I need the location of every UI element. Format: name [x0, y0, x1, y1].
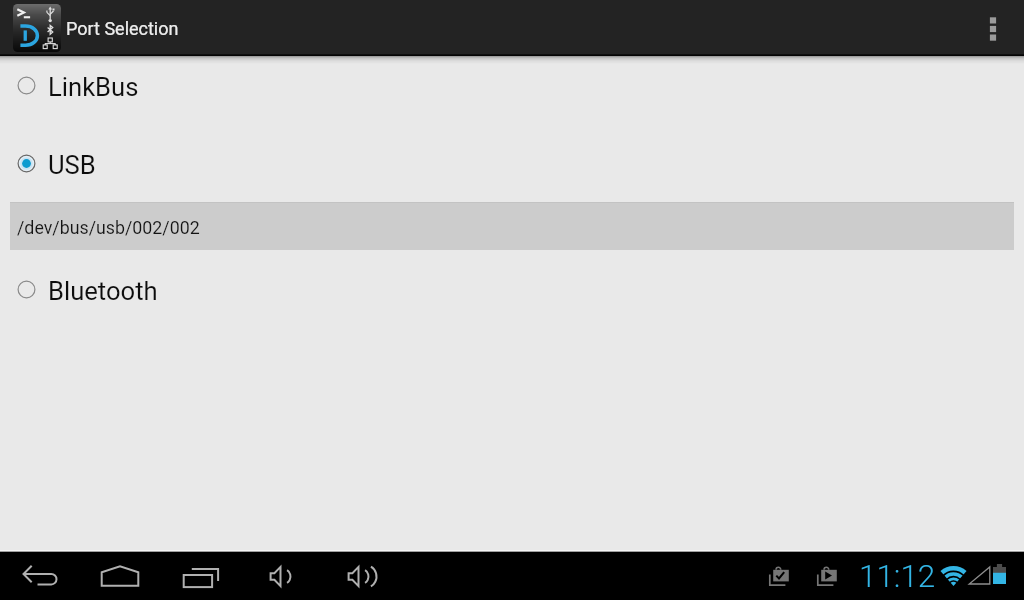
staticText: USB [48, 150, 96, 180]
button[interactable]: LinkBus [0, 57, 1024, 116]
button[interactable]: Volume up [329, 552, 389, 600]
button[interactable]: Back [10, 552, 70, 600]
staticText: Port Selection [66, 18, 179, 39]
button[interactable]: App icon, navigate up [0, 0, 200, 56]
staticText: /dev/bus/usb/002/002 [17, 217, 200, 238]
staticText: LinkBus [48, 72, 139, 102]
button[interactable]: /dev/bus/usb/002/002 [10, 202, 1014, 250]
button[interactable]: Volume down [251, 552, 311, 600]
button[interactable]: More options [961, 0, 1024, 56]
button[interactable]: Recent apps [171, 552, 231, 600]
button[interactable]: USB [0, 135, 1024, 194]
button[interactable]: Home [90, 552, 150, 600]
other: App icon, navigate up [13, 4, 61, 52]
staticText: 11:12 [859, 558, 936, 595]
button[interactable]: Bluetooth [0, 261, 1024, 320]
staticText: Bluetooth [48, 276, 158, 306]
